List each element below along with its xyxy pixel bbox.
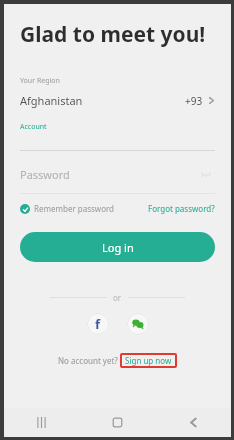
button[interactable]: Sign up now bbox=[125, 355, 172, 366]
button[interactable]: Sign in with WeChat bbox=[127, 313, 149, 335]
staticText: Remember password bbox=[34, 203, 115, 214]
staticText: Your Region bbox=[20, 76, 60, 86]
staticText: +93 bbox=[185, 94, 203, 108]
button[interactable]: Forgot password? bbox=[148, 203, 215, 214]
button[interactable]: Password bbox=[20, 165, 215, 183]
button[interactable]: Sign in with Facebook bbox=[87, 313, 109, 335]
staticText: f bbox=[95, 315, 101, 333]
staticText: Glad to meet you! bbox=[20, 20, 206, 49]
button[interactable]: Show password bbox=[197, 165, 215, 183]
button[interactable]: Recents bbox=[4, 408, 79, 437]
staticText: or bbox=[113, 292, 122, 303]
staticText: Password bbox=[20, 167, 197, 182]
staticText: No account yet? bbox=[58, 355, 118, 366]
staticText: Log in bbox=[102, 240, 134, 255]
button[interactable]: Back bbox=[155, 408, 231, 437]
staticText: Afghanistan bbox=[20, 93, 185, 108]
button[interactable]: Log in bbox=[20, 232, 215, 262]
button[interactable]: Account bbox=[20, 122, 215, 151]
button[interactable]: Your Region bbox=[20, 76, 215, 108]
staticText: Sign up now bbox=[125, 355, 172, 366]
button[interactable]: Home bbox=[79, 408, 155, 437]
staticText: Account bbox=[20, 122, 47, 132]
button[interactable]: Remember password bbox=[20, 203, 115, 214]
